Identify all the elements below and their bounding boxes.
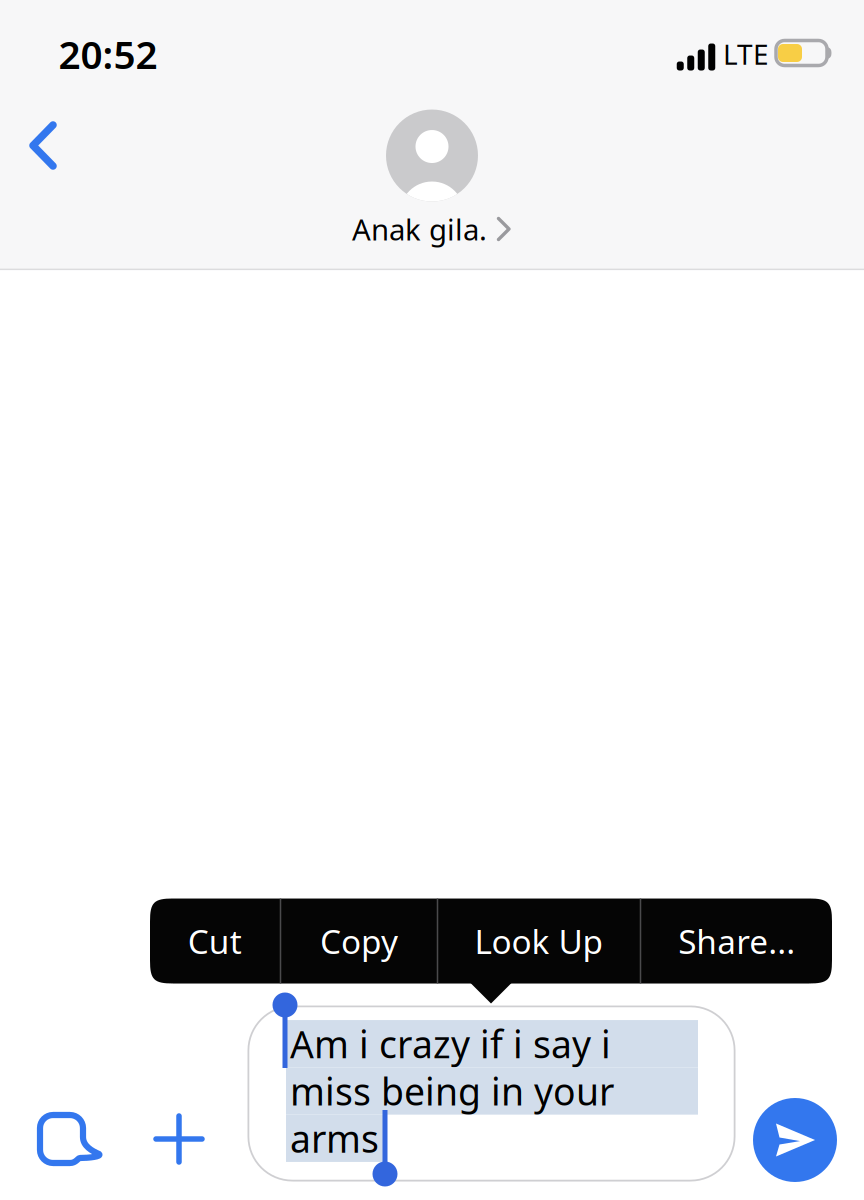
button[interactable]: Apps bbox=[24, 1095, 114, 1185]
button[interactable]: Back bbox=[0, 100, 89, 192]
staticText: Anak gila. bbox=[352, 209, 487, 248]
button[interactable]: Look Up bbox=[438, 898, 640, 983]
button[interactable]: Cut bbox=[150, 898, 280, 983]
staticText: LTE bbox=[723, 35, 769, 73]
button[interactable]: Copy bbox=[281, 898, 437, 983]
staticText: arms bbox=[290, 1113, 379, 1163]
staticText: Look Up bbox=[474, 919, 603, 963]
button[interactable]: Share... bbox=[641, 898, 832, 983]
staticText: miss being in your bbox=[290, 1066, 614, 1116]
button[interactable]: Add bbox=[134, 1094, 224, 1184]
button[interactable]: Anak gila. bbox=[332, 104, 532, 254]
staticText: Copy bbox=[320, 919, 398, 963]
staticText: Am i crazy if i say i bbox=[290, 1019, 611, 1068]
button[interactable]: Send bbox=[753, 1098, 837, 1182]
staticText: Cut bbox=[188, 919, 242, 963]
staticText: 20:52 bbox=[58, 28, 157, 80]
staticText: Share... bbox=[678, 919, 795, 963]
